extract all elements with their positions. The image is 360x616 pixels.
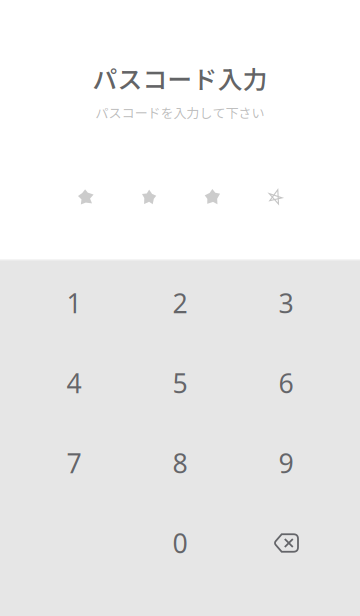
staticText: 7 <box>66 445 81 481</box>
button[interactable]: 9 <box>233 423 339 503</box>
staticText: 3 <box>278 285 293 321</box>
staticText: パスコードを入力して下さい <box>95 103 264 122</box>
button[interactable]: 6 <box>233 343 339 423</box>
staticText: 8 <box>172 445 187 481</box>
button[interactable]: 0 <box>127 503 233 583</box>
staticText: 4 <box>66 365 81 401</box>
staticText: パスコード入力 <box>92 60 267 96</box>
button[interactable]: Delete <box>233 503 339 583</box>
button[interactable]: 1 <box>21 263 127 343</box>
staticText: 6 <box>278 365 293 401</box>
button[interactable]: 5 <box>127 343 233 423</box>
staticText: 2 <box>172 285 187 321</box>
button[interactable]: 4 <box>21 343 127 423</box>
button[interactable]: 3 <box>233 263 339 343</box>
staticText: 5 <box>172 365 187 401</box>
staticText: 0 <box>172 525 187 561</box>
staticText: 1 <box>66 285 81 321</box>
button[interactable]: 2 <box>127 263 233 343</box>
staticText: 9 <box>278 445 293 481</box>
button[interactable]: 7 <box>21 423 127 503</box>
button[interactable]: 8 <box>127 423 233 503</box>
